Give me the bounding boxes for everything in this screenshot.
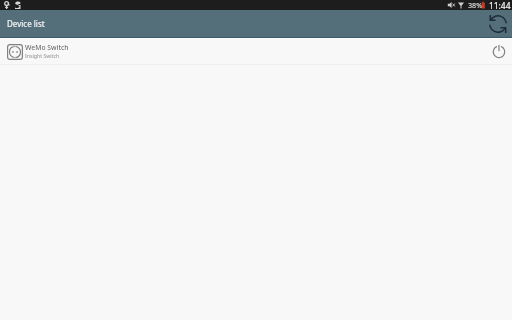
staticText: 38%	[468, 0, 483, 10]
button[interactable]: Refresh	[486, 11, 512, 37]
staticText: Insight Switch	[25, 52, 60, 59]
staticText: Device list	[7, 18, 45, 29]
button[interactable]: Power toggle	[486, 39, 512, 64]
staticText: 11:44	[489, 0, 511, 10]
button[interactable]: WeMo Switch	[0, 39, 512, 64]
staticText: WeMo Switch	[25, 43, 69, 52]
